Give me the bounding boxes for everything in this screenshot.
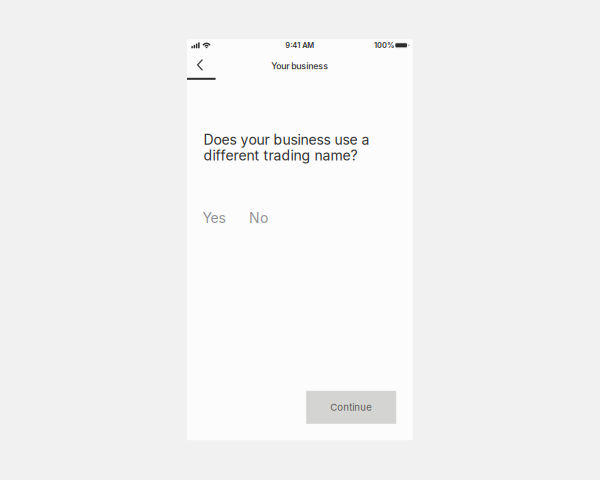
staticText: Continue — [330, 401, 372, 413]
staticText: No — [249, 209, 268, 226]
staticText: Yes — [202, 209, 225, 226]
button[interactable]: Back — [187, 51, 213, 77]
button[interactable]: Yes — [202, 208, 226, 228]
staticText: 100% — [374, 41, 394, 50]
staticText: different trading name? — [203, 147, 357, 164]
button[interactable]: No — [248, 208, 268, 228]
button[interactable]: Continue — [306, 391, 396, 424]
staticText: Does your business use a — [203, 131, 369, 148]
staticText: Your business — [271, 61, 328, 71]
staticText: 9:41 AM — [285, 41, 314, 50]
